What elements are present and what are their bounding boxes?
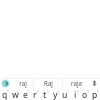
staticText: 6 [57, 90, 59, 94]
staticText: 5 [47, 90, 49, 94]
staticText: q [2, 89, 8, 100]
button[interactable]: Raj [36, 78, 60, 88]
staticText: Raj [44, 79, 53, 87]
staticText: i [74, 89, 77, 100]
staticText: u [62, 89, 68, 100]
staticText: w [12, 89, 19, 100]
staticText: p [92, 89, 98, 100]
staticText: 4 [37, 90, 39, 94]
button[interactable]: raj [10, 78, 36, 88]
staticText: 2 [17, 90, 19, 94]
staticText: y [53, 89, 58, 100]
staticText: e [23, 89, 28, 100]
button[interactable]: o [80, 88, 90, 100]
button[interactable]: q [0, 88, 10, 100]
staticText: o [82, 89, 88, 100]
button[interactable]: raja [60, 78, 93, 88]
staticText: t [43, 89, 47, 100]
button[interactable]: i [70, 88, 80, 100]
staticText: 3 [27, 90, 29, 94]
staticText: 7 [67, 90, 69, 94]
staticText: 9 [87, 90, 89, 94]
button[interactable]: Google Assistant [1, 79, 10, 88]
staticText: raja [71, 79, 82, 87]
staticText: r [33, 89, 37, 100]
button[interactable]: p [90, 88, 100, 100]
button[interactable]: Voice input [91, 78, 98, 88]
button[interactable]: e [20, 88, 30, 100]
button[interactable]: w [10, 88, 20, 100]
button[interactable]: u [60, 88, 70, 100]
staticText: 0 [97, 90, 99, 94]
button[interactable]: y [50, 88, 60, 100]
button[interactable]: t [40, 88, 50, 100]
staticText: 1 [7, 90, 9, 94]
staticText: raj [19, 79, 27, 87]
staticText: 8 [77, 90, 79, 94]
button[interactable]: r [30, 88, 40, 100]
